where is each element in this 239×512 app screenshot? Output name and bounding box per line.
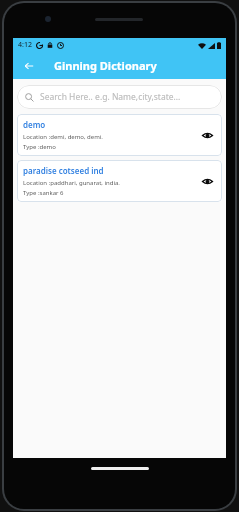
staticText: Search Here.. e.g. Name,city,state... [40,91,181,103]
staticText: paradise cotseed ind [23,165,104,176]
staticText: Location :paddhari, gunarat, india. [23,179,120,187]
button[interactable]: Back [21,58,37,74]
button[interactable]: View details [198,126,216,144]
staticText: Type :demo [23,143,56,151]
staticText: Ginning Dictionary [54,58,157,73]
staticText: Type :sankar 6 [23,189,64,197]
button[interactable]: Search Here.. e.g. Name,city,state... [17,85,222,109]
button[interactable]: View details [198,172,216,190]
staticText: 4:12 [18,40,32,50]
staticText: Location :demi, demo, demi. [23,133,103,141]
button[interactable]: demo [17,114,222,156]
staticText: demo [23,119,46,130]
button[interactable]: paradise cotseed ind [17,160,222,202]
